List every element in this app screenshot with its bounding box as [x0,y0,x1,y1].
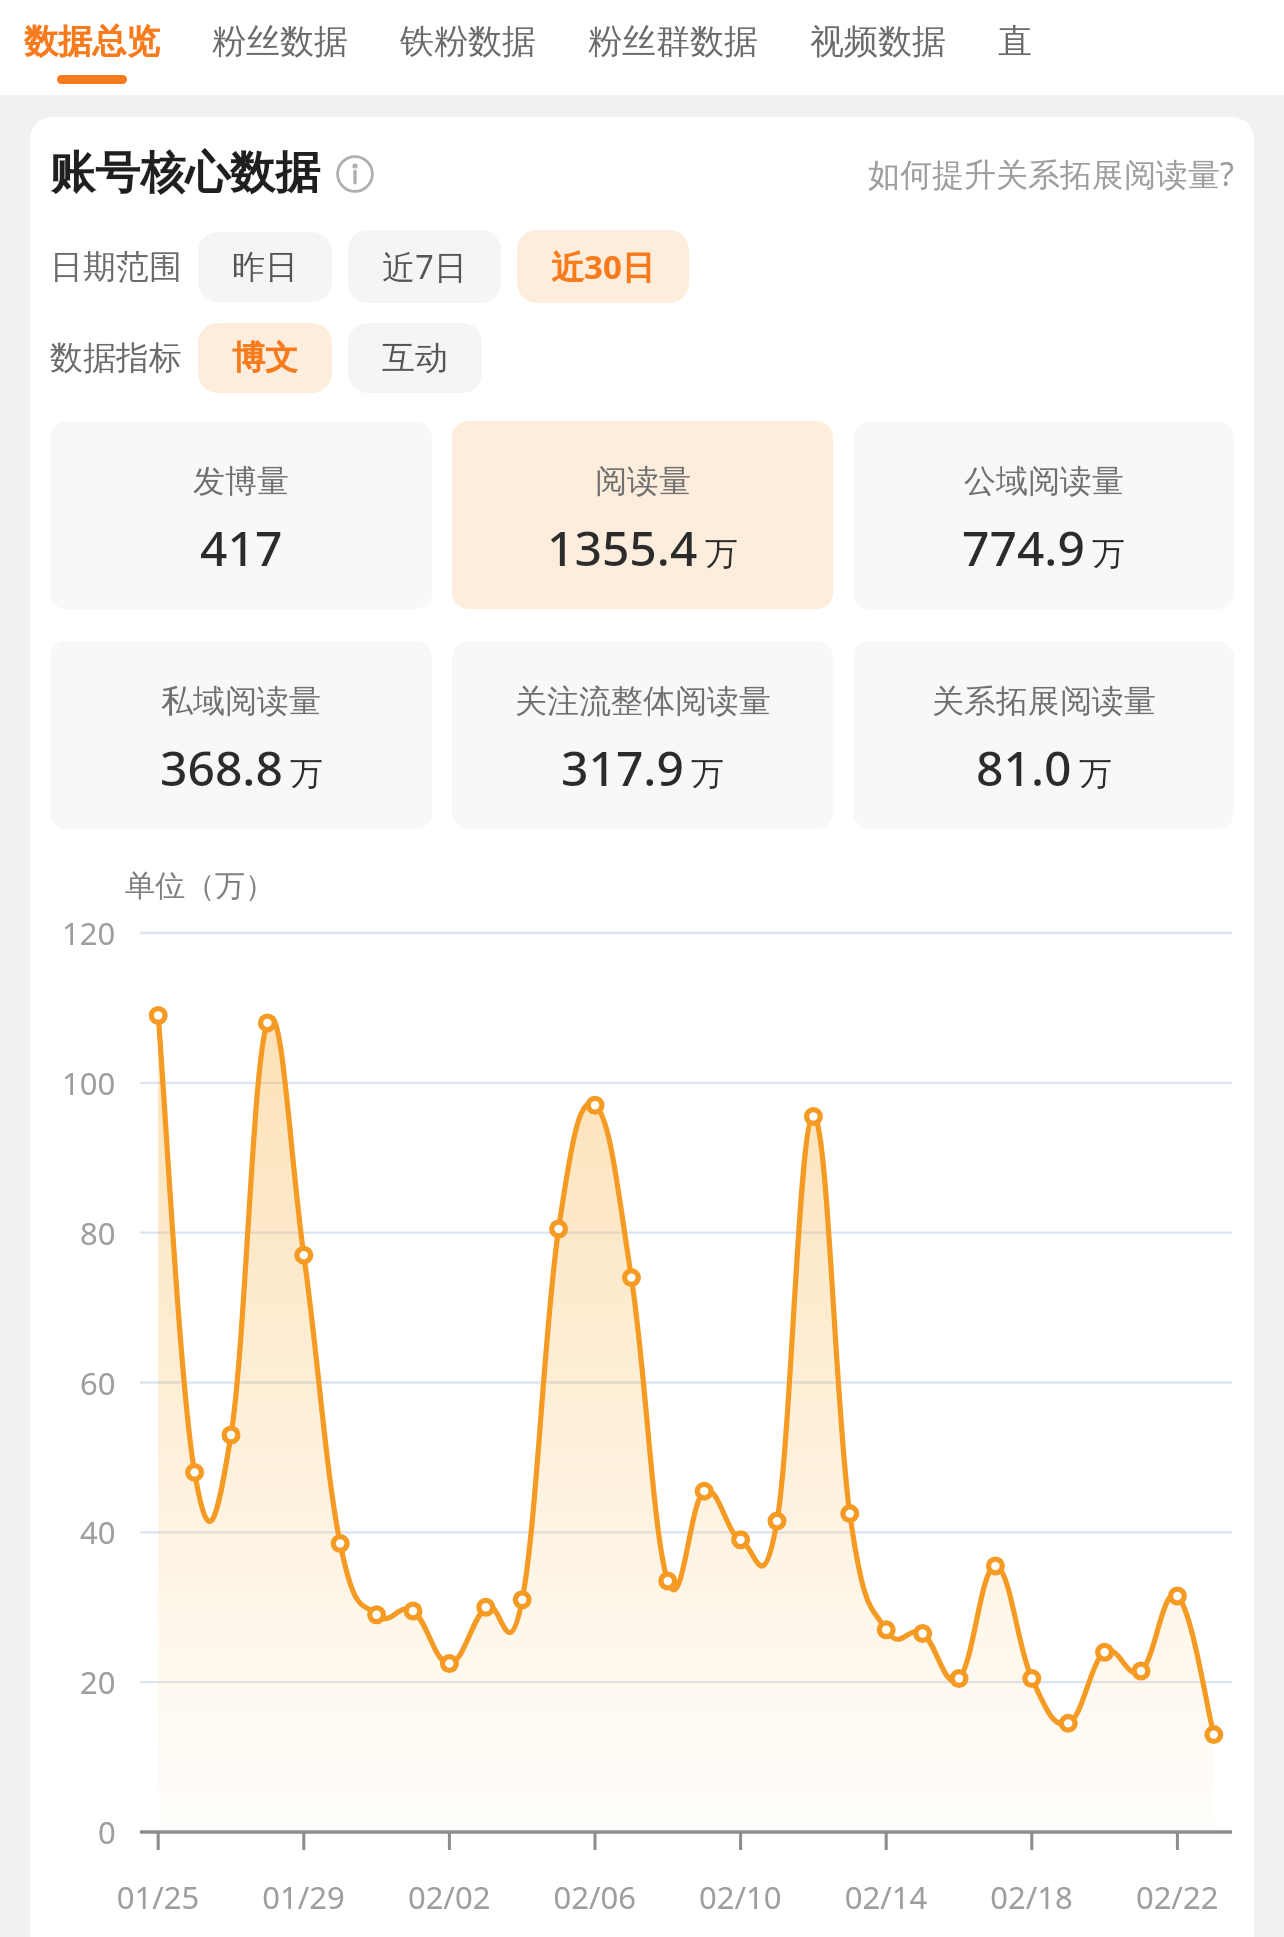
button[interactable]: 近30日 [517,230,689,303]
staticText: 博文 [232,337,298,379]
staticText: 万 [290,753,323,795]
staticText: 1355.4 [547,515,698,580]
button[interactable]: 公域阅读量 [853,421,1234,609]
staticText: 铁粉数据 [400,20,536,63]
staticText: 万 [1079,753,1112,795]
button[interactable]: 视频数据 [810,0,946,75]
button[interactable]: 近7日 [348,230,501,303]
staticText: 数据总览 [24,20,160,63]
staticText: 私域阅读量 [161,681,321,721]
button[interactable]: 关注流整体阅读量 [452,641,833,829]
staticText: 互动 [382,337,448,379]
staticText: 关注流整体阅读量 [515,681,771,721]
staticText: 417 [200,515,283,580]
button[interactable]: 直 [998,0,1032,75]
staticText: 粉丝群数据 [588,20,758,63]
staticText: 昨日 [232,246,298,288]
button[interactable]: 博文 [198,323,332,393]
button[interactable]: 粉丝数据 [212,0,348,75]
button[interactable]: 昨日 [198,232,332,302]
button[interactable]: 阅读量 [452,421,833,609]
button[interactable]: 说明 [336,155,374,193]
staticText: 近7日 [382,244,467,289]
staticText: 视频数据 [810,20,946,63]
staticText: 近30日 [551,244,655,289]
staticText: 日期范围 [50,246,182,288]
staticText: 粉丝数据 [212,20,348,63]
staticText: 万 [705,533,738,575]
staticText: 81.0 [976,735,1072,800]
button[interactable]: 粉丝群数据 [588,0,758,75]
staticText: 发博量 [193,461,289,501]
button[interactable]: 数据总览 [24,0,160,84]
staticText: 关系拓展阅读量 [932,681,1156,721]
staticText: 774.9 [962,515,1085,580]
button[interactable]: 如何提升关系拓展阅读量? [868,152,1234,196]
staticText: 公域阅读量 [964,461,1124,501]
staticText: 单位（万） [125,867,275,905]
button[interactable]: 铁粉数据 [400,0,536,75]
button[interactable]: 发博量 [50,421,432,609]
staticText: 直 [998,20,1032,63]
staticText: 如何提升关系拓展阅读量? [868,152,1234,196]
button[interactable]: 关系拓展阅读量 [853,641,1234,829]
staticText: 数据指标 [50,337,182,379]
staticText: 账号核心数据 [50,145,320,202]
staticText: 阅读量 [595,461,691,501]
button[interactable]: 互动 [348,323,482,393]
staticText: 万 [691,753,724,795]
staticText: 368.8 [160,735,283,800]
button[interactable]: 私域阅读量 [50,641,432,829]
staticText: 317.9 [561,735,684,800]
staticText: 万 [1092,533,1125,575]
